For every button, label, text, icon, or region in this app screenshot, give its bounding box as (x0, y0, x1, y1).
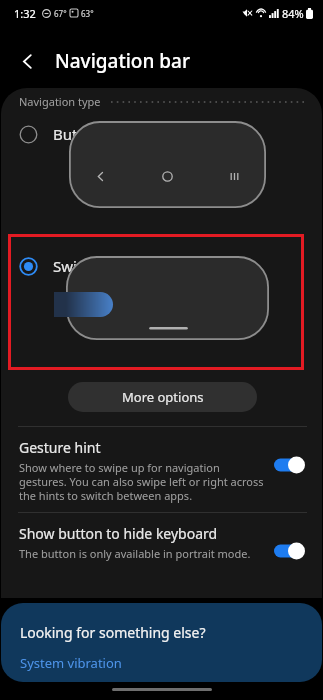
staticText: Navigation type (19, 94, 101, 109)
button[interactable]: Back (10, 44, 44, 78)
staticText: Show where to swipe up for navigation ge… (19, 460, 266, 503)
button[interactable]: Gesture hint (1, 434, 322, 503)
button[interactable]: Show button to hide keyboard (1, 520, 322, 561)
staticText: 1:32 (14, 6, 36, 21)
staticText: 67° (54, 8, 67, 19)
staticText: Navigation bar (55, 48, 190, 74)
button[interactable]: Swipe gestures (1, 250, 322, 282)
staticText: Show button to hide keyboard (19, 524, 218, 543)
staticText: Swipe gestures (53, 256, 160, 276)
staticText: Buttons (53, 124, 109, 144)
staticText: 84% (282, 6, 304, 21)
button[interactable]: Toggle on (274, 456, 306, 474)
button[interactable]: Toggle on (274, 542, 306, 560)
staticText: Gesture hint (19, 438, 101, 457)
staticText: The button is only available in portrait… (19, 546, 251, 561)
button[interactable]: Buttons (1, 118, 322, 150)
button[interactable]: More options (68, 382, 257, 412)
staticText: Looking for something else? (20, 623, 206, 642)
staticText: More options (122, 388, 204, 406)
button[interactable]: System vibration (20, 654, 122, 672)
staticText: 63° (81, 8, 94, 19)
